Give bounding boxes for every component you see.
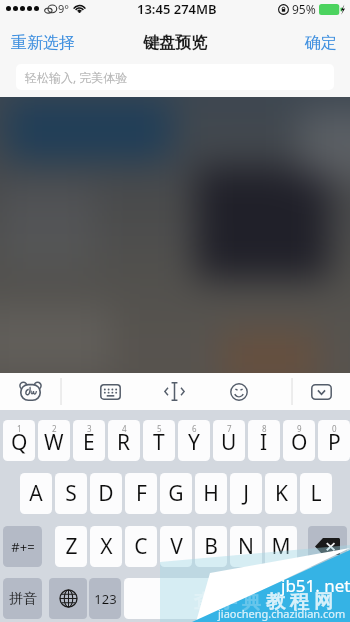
staticText: U (221, 428, 237, 457)
staticText: I (260, 428, 268, 457)
staticText: B (204, 532, 218, 561)
staticText: S (65, 479, 77, 508)
staticText: P (328, 428, 341, 457)
staticText: G (168, 479, 184, 508)
button[interactable]: 123 (89, 578, 121, 619)
staticText: V (170, 532, 183, 561)
button[interactable]: Z (55, 526, 87, 567)
button[interactable]: 9 (283, 420, 315, 461)
button[interactable]: 拼音 (3, 578, 42, 619)
button[interactable]: 0 (318, 420, 350, 461)
staticText: 9° (58, 1, 69, 16)
button[interactable]: 4 (108, 420, 140, 461)
button[interactable]: H (195, 473, 227, 514)
button[interactable] (124, 578, 284, 619)
button[interactable]: 确定 (298, 30, 344, 56)
button[interactable]: 重新选择 (4, 30, 82, 56)
button[interactable]: N (230, 526, 262, 567)
staticText: K (275, 479, 288, 508)
staticText: 9 (297, 423, 302, 434)
button[interactable]: L (300, 473, 332, 514)
button[interactable]: B (195, 526, 227, 567)
staticText: 1 (17, 423, 22, 434)
button[interactable]: K (265, 473, 297, 514)
button[interactable]: A (20, 473, 52, 514)
staticText: R (117, 428, 131, 457)
staticText: 123 (94, 590, 117, 608)
staticText: C (134, 532, 148, 561)
staticText: A (29, 479, 43, 508)
staticText: 6 (192, 423, 197, 434)
staticText: 查 字 典 (194, 588, 261, 614)
button[interactable]: G (160, 473, 192, 514)
button[interactable]: Baidu input method (0, 373, 61, 410)
staticText: #+= (11, 538, 35, 556)
button[interactable]: 7 (213, 420, 245, 461)
button[interactable]: 1 (3, 420, 35, 461)
staticText: J (243, 479, 249, 508)
button[interactable] (287, 578, 347, 619)
staticText: 0 (332, 423, 337, 434)
staticText: H (203, 479, 219, 508)
staticText: 轻松输入, 完美体验 (25, 69, 128, 85)
button[interactable]: Emoji (190, 373, 288, 410)
staticText: 8 (262, 423, 267, 434)
button[interactable]: F (125, 473, 157, 514)
button[interactable]: V (160, 526, 192, 567)
button[interactable]: J (230, 473, 262, 514)
button[interactable]: 轻松输入, 完美体验 (16, 64, 334, 90)
staticText: 2 (52, 423, 57, 434)
staticText: 4 (122, 423, 127, 434)
staticText: Y (188, 428, 200, 457)
staticText: 重新选择 (11, 33, 75, 53)
button[interactable]: Backspace (308, 526, 347, 567)
staticText: 3 (87, 423, 92, 434)
staticText: F (136, 479, 147, 508)
staticText: L (310, 479, 322, 508)
staticText: W (44, 428, 64, 457)
staticText: 5 (157, 423, 162, 434)
staticText: D (98, 479, 114, 508)
staticText: 95% (292, 1, 316, 17)
staticText: 13:45 274MB (137, 0, 217, 17)
button[interactable]: D (90, 473, 122, 514)
staticText: N (238, 532, 254, 561)
staticText: Z (65, 532, 78, 561)
staticText: 拼音 (9, 590, 37, 608)
button[interactable]: C (125, 526, 157, 567)
button[interactable]: Hide keyboard (292, 373, 350, 410)
staticText: jb51. net (281, 574, 350, 597)
staticText: M (271, 532, 291, 561)
button[interactable]: Switch language (49, 578, 87, 619)
button[interactable]: #+= (3, 526, 42, 567)
staticText: 确定 (305, 33, 337, 53)
button[interactable]: 2 (38, 420, 70, 461)
staticText: jiaocheng.chazidian.com (218, 606, 346, 621)
staticText: T (153, 428, 165, 457)
staticText: Q (11, 428, 28, 457)
staticText: X (100, 532, 113, 561)
staticText: O (291, 428, 308, 457)
button[interactable]: X (90, 526, 122, 567)
staticText: 教 程 网 (266, 588, 333, 614)
button[interactable]: 8 (248, 420, 280, 461)
staticText: 键盘预览 (143, 33, 207, 53)
staticText: E (83, 428, 95, 457)
button[interactable]: Keyboard layout (61, 373, 159, 410)
button[interactable]: 3 (73, 420, 105, 461)
button[interactable]: S (55, 473, 87, 514)
button[interactable]: 6 (178, 420, 210, 461)
button[interactable]: 5 (143, 420, 175, 461)
button[interactable]: M (265, 526, 297, 567)
staticText: 7 (227, 423, 232, 434)
button[interactable]: Move cursor (159, 373, 190, 410)
